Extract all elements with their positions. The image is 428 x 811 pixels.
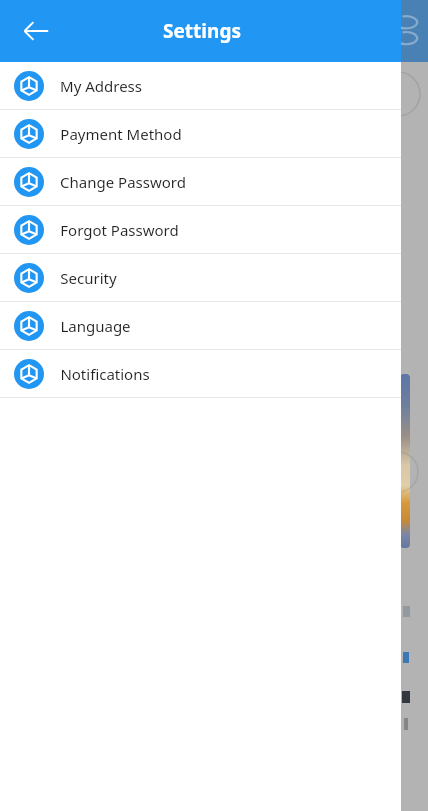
staticText: Notifications xyxy=(60,364,150,384)
staticText: Security xyxy=(60,268,117,288)
staticText: Language xyxy=(60,316,131,336)
staticText: Change Password xyxy=(60,172,186,192)
button[interactable]: Language xyxy=(0,302,401,349)
button[interactable]: Forgot Password xyxy=(0,206,401,253)
button[interactable]: Payment Method xyxy=(0,110,401,157)
staticText: Payment Method xyxy=(60,124,182,144)
button[interactable]: Security xyxy=(0,254,401,301)
staticText: My Address xyxy=(60,76,142,96)
button[interactable]: Notifications xyxy=(0,350,401,397)
button[interactable]: Back xyxy=(12,7,60,55)
button[interactable]: My Address xyxy=(0,62,401,109)
staticText: Settings xyxy=(163,18,241,44)
button[interactable]: Change Password xyxy=(0,158,401,205)
staticText: Forgot Password xyxy=(60,220,179,240)
